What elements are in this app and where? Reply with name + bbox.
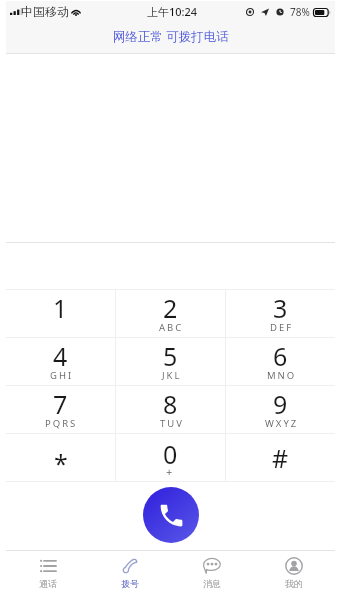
button[interactable]: 0 — [116, 434, 225, 481]
staticText: PQRS — [45, 417, 78, 430]
staticText: * — [54, 446, 68, 480]
button[interactable]: 通话 — [6, 551, 89, 590]
staticText: 2 — [163, 291, 178, 325]
button[interactable]: 9 — [226, 386, 335, 433]
staticText: WXYZ — [265, 417, 299, 430]
staticText: 0 — [163, 437, 178, 471]
button[interactable]: * — [6, 434, 115, 481]
staticText: 4 — [53, 339, 68, 373]
button[interactable]: # — [226, 434, 335, 481]
staticText: 6 — [273, 339, 288, 373]
button[interactable]: 3 — [226, 290, 335, 337]
staticText: ABC — [159, 321, 184, 334]
staticText: 通话 — [39, 578, 57, 589]
button[interactable]: 我的 — [253, 551, 335, 590]
staticText: GHI — [50, 369, 74, 382]
staticText: 9 — [273, 387, 288, 421]
staticText: 上午10:24 — [147, 4, 198, 19]
button[interactable]: 1 — [6, 290, 115, 337]
staticText: 拨号 — [121, 578, 139, 589]
button[interactable]: 5 — [116, 338, 225, 385]
staticText: 78% — [290, 5, 310, 19]
staticText: 7 — [53, 387, 68, 421]
button[interactable]: 7 — [6, 386, 115, 433]
staticText: 3 — [273, 291, 288, 325]
staticText: 8 — [163, 387, 178, 421]
staticText: 5 — [163, 339, 178, 373]
staticText: + — [166, 464, 175, 479]
button[interactable]: 8 — [116, 386, 225, 433]
button[interactable]: 消息 — [171, 551, 253, 590]
staticText: 我的 — [285, 578, 303, 589]
staticText: 网络正常 可拨打电话 — [113, 28, 229, 45]
staticText: 中国移动 — [21, 4, 69, 19]
staticText: DEF — [270, 321, 294, 334]
staticText: # — [272, 441, 289, 475]
staticText: 1 — [53, 291, 68, 325]
button[interactable]: 4 — [6, 338, 115, 385]
staticText: JKL — [162, 369, 182, 382]
button[interactable]: Call — [143, 487, 199, 543]
staticText: TUV — [160, 417, 184, 430]
button[interactable]: 2 — [116, 290, 225, 337]
button[interactable]: 6 — [226, 338, 335, 385]
staticText: MNO — [267, 369, 297, 382]
staticText: 消息 — [203, 578, 221, 589]
button[interactable]: 拨号 — [89, 551, 171, 590]
